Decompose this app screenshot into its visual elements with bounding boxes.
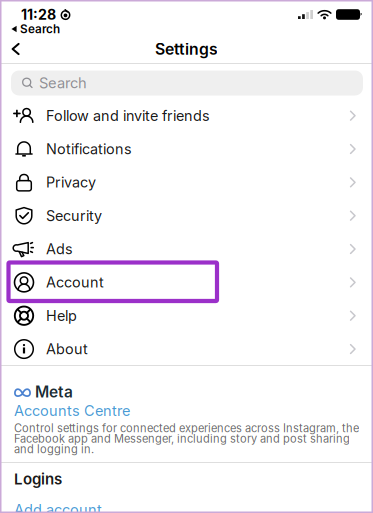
staticText: Control settings for connected experienc… [14,423,359,454]
button[interactable]: About [0,332,373,366]
button[interactable]: Security [0,199,373,232]
button[interactable]: Search [11,23,66,34]
button[interactable]: Help [0,299,373,332]
button[interactable]: Search [11,70,363,95]
button[interactable]: Accounts Centre [14,402,130,420]
button[interactable]: Add account [14,501,102,513]
staticText: Search [20,22,60,36]
staticText: 11:28 [21,6,56,23]
staticText: Security [46,207,102,224]
staticText: Search [39,74,87,92]
staticText: Follow and invite friends [46,107,210,124]
staticText: Account [46,274,104,291]
staticText: Ads [46,240,73,258]
button[interactable]: Notifications [0,132,373,166]
staticText: Logins [14,470,62,488]
button[interactable]: Account [0,266,373,299]
staticText: Help [46,307,77,324]
button[interactable]: Privacy [0,166,373,199]
staticText: Notifications [46,140,132,158]
staticText: Settings [155,39,218,58]
staticText: About [46,340,88,358]
staticText: Privacy [46,174,96,191]
button[interactable]: Back [0,37,33,61]
button[interactable]: Follow and invite friends [0,99,373,132]
staticText: Add account [14,501,102,513]
button[interactable]: Ads [0,232,373,266]
staticText: Accounts Centre [14,402,130,420]
staticText: Meta [35,382,73,401]
